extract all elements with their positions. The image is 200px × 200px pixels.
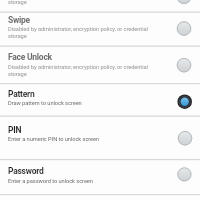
button[interactable] — [0, 116, 200, 159]
staticText: Swipe — [8, 15, 30, 25]
staticText: PIN — [8, 125, 22, 135]
staticText: Disabled by administrator, encryption po… — [8, 26, 148, 40]
staticText: Password — [8, 166, 44, 176]
staticText: storage — [8, 0, 27, 6]
staticText: Enter a numeric PIN to unlock screen — [8, 136, 100, 143]
staticText: Disabled by administrator, encryption po… — [8, 64, 148, 78]
staticText: Draw pattern to unlock screen — [8, 100, 82, 107]
button[interactable] — [0, 12, 200, 46]
button[interactable] — [0, 46, 200, 83]
button[interactable] — [0, 83, 200, 116]
button[interactable] — [0, 159, 200, 194]
staticText: Face Unlock — [8, 52, 52, 62]
staticText: Enter a password to unlock screen — [8, 178, 93, 185]
staticText: Pattern — [8, 89, 35, 99]
